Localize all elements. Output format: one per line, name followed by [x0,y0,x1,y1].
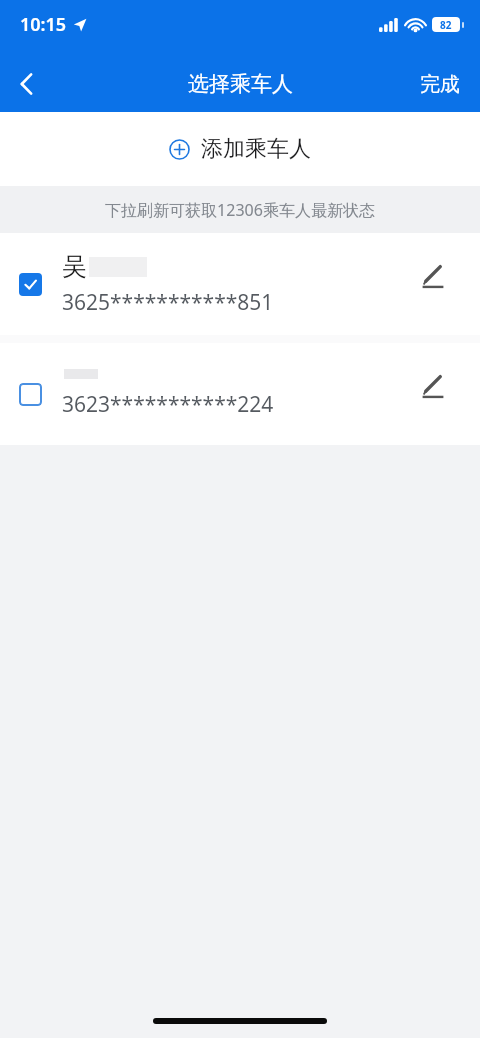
button[interactable]: Edit [410,253,456,299]
staticText: 完成 [420,72,460,97]
button[interactable]: Edit [410,363,456,409]
staticText: 82 [440,18,452,32]
staticText: 下拉刷新可获取12306乘车人最新状态 [105,199,375,221]
staticText: 添加乘车人 [201,135,311,163]
button[interactable]: Not selected [0,343,480,445]
staticText: 3623***********224 [62,390,274,419]
button[interactable]: Not selected [8,372,52,416]
button[interactable]: Back [0,58,52,110]
button[interactable]: 添加乘车人 [0,112,480,186]
staticText: 3625***********851 [62,288,274,317]
button[interactable]: Selected [0,233,480,335]
staticText: 选择乘车人 [188,71,293,97]
button[interactable]: Selected [8,262,52,306]
staticText: 吴 [62,251,87,282]
staticText: 10:15 [20,12,67,37]
button[interactable]: 完成 [412,64,468,105]
